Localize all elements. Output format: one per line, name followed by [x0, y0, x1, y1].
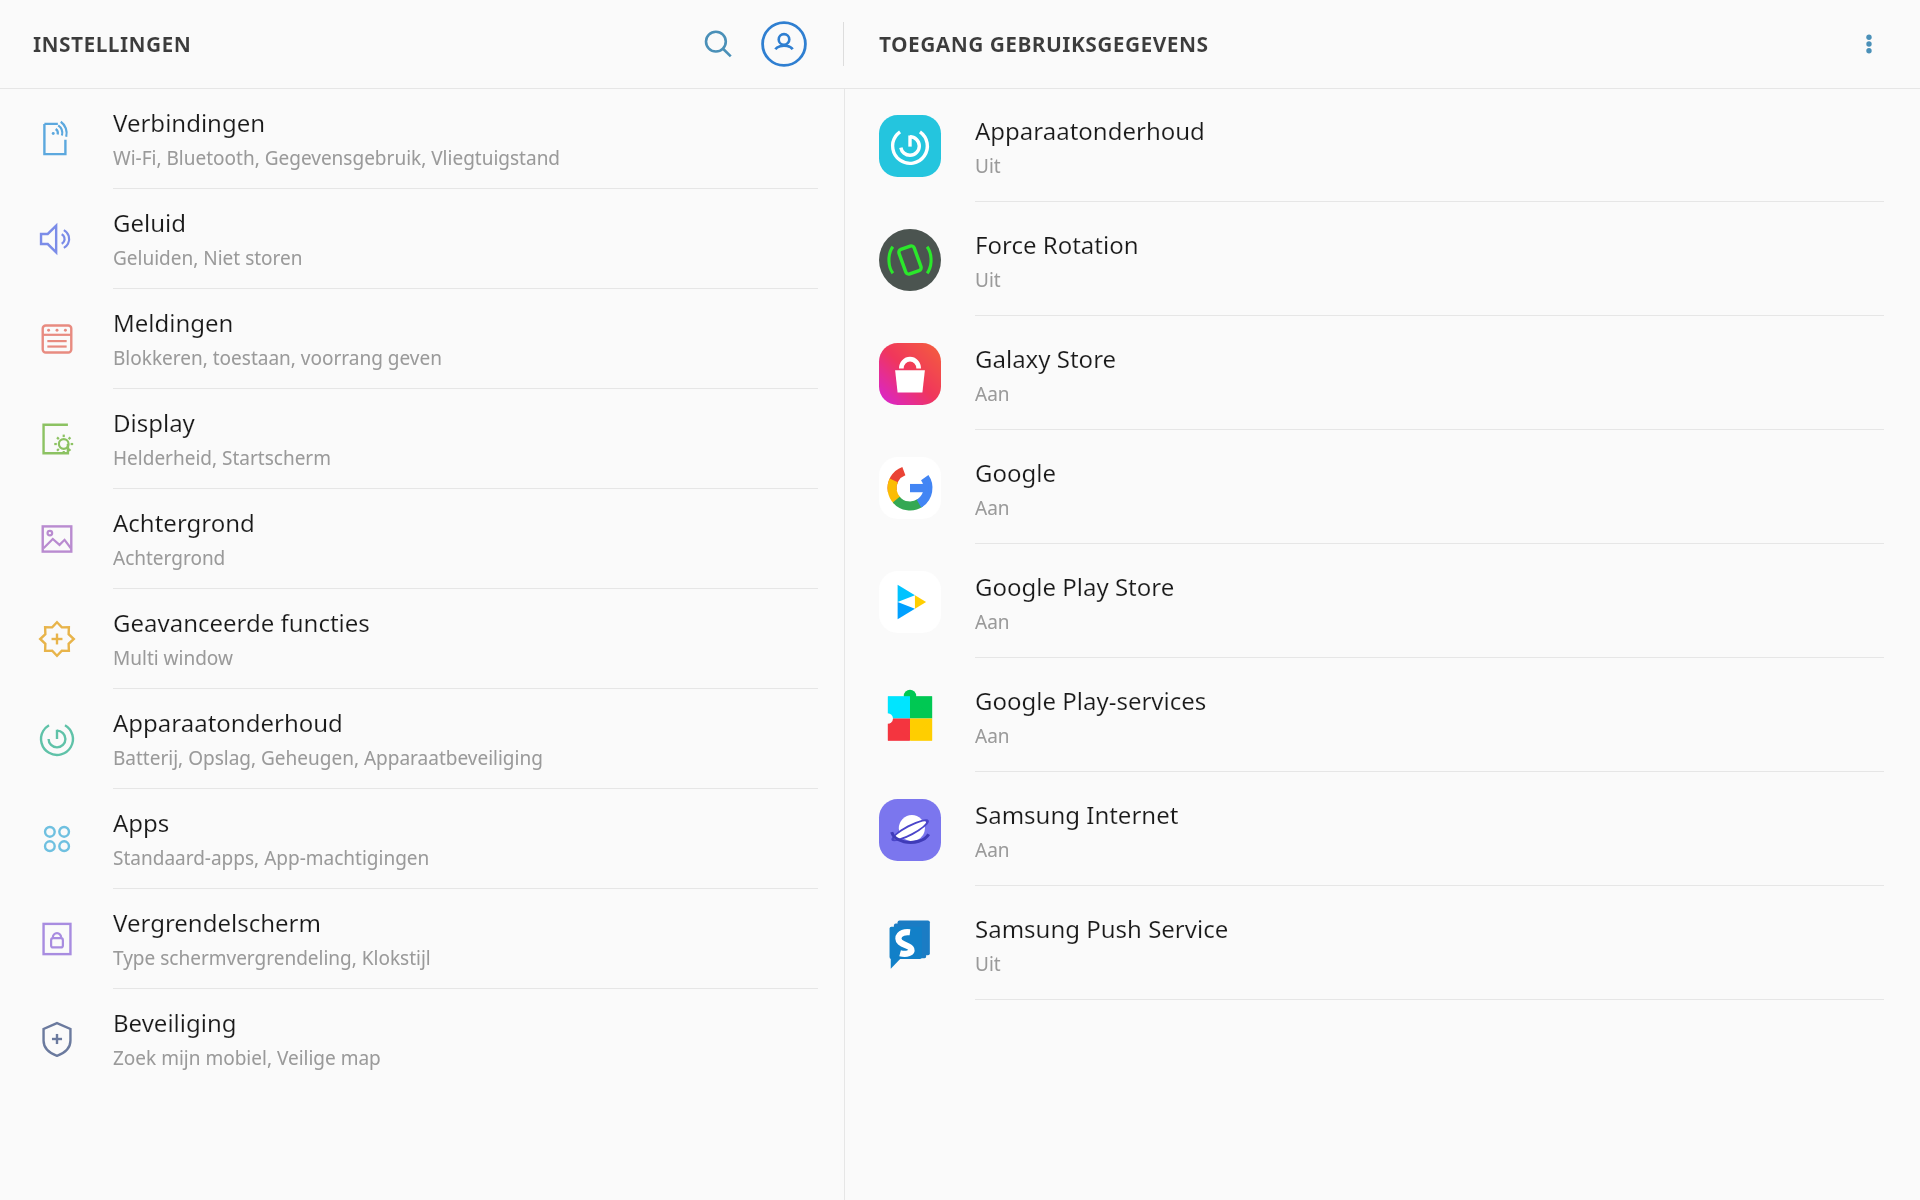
staticText: Zoek mijn mobiel, Veilige map	[113, 1045, 381, 1071]
button[interactable]: Apps	[0, 789, 844, 888]
button[interactable]: Meer opties	[1843, 18, 1895, 70]
button[interactable]: Geavanceerde functies	[0, 589, 844, 688]
staticText: Display	[113, 406, 195, 439]
staticText: Type schermvergrendeling, Klokstijl	[113, 945, 431, 971]
staticText: Galaxy Store	[975, 342, 1117, 375]
staticText: Batterij, Opslag, Geheugen, Apparaatbeve…	[113, 745, 543, 771]
staticText: Wi-Fi, Bluetooth, Gegevensgebruik, Vlieg…	[113, 145, 561, 171]
staticText: Google	[975, 456, 1056, 489]
button[interactable]: Display	[0, 389, 844, 488]
staticText: Geluiden, Niet storen	[113, 245, 303, 271]
staticText: Aan	[975, 723, 1010, 749]
staticText: Beveiliging	[113, 1006, 237, 1039]
staticText: INSTELLINGEN	[33, 30, 192, 59]
staticText: Force Rotation	[975, 228, 1139, 261]
button[interactable]: Force Rotation	[845, 203, 1920, 317]
staticText: Aan	[975, 381, 1010, 407]
staticText: Multi window	[113, 645, 233, 671]
staticText: Achtergrond	[113, 545, 226, 571]
staticText: Aan	[975, 495, 1010, 521]
button[interactable]: Google Play-services	[845, 659, 1920, 773]
staticText: Apparaatonderhoud	[975, 114, 1205, 147]
button[interactable]: Vergrendelscherm	[0, 889, 844, 988]
staticText: Aan	[975, 837, 1010, 863]
button[interactable]: Apparaatonderhoud	[0, 689, 844, 788]
button[interactable]: Achtergrond	[0, 489, 844, 588]
staticText: Blokkeren, toestaan, voorrang geven	[113, 345, 442, 371]
staticText: Meldingen	[113, 306, 234, 339]
staticText: Uit	[975, 153, 1001, 179]
staticText: Google Play-services	[975, 684, 1207, 717]
staticText: Achtergrond	[113, 506, 255, 539]
staticText: Samsung Internet	[975, 798, 1179, 831]
button[interactable]: Apparaatonderhoud	[845, 89, 1920, 203]
button[interactable]: Samsung Push Service	[845, 887, 1920, 1001]
staticText: Uit	[975, 951, 1001, 977]
staticText: Verbindingen	[113, 106, 266, 139]
button[interactable]: Geluid	[0, 189, 844, 288]
button[interactable]: Zoeken	[690, 16, 746, 72]
staticText: Google Play Store	[975, 570, 1175, 603]
staticText: Helderheid, Startscherm	[113, 445, 331, 471]
staticText: Uit	[975, 267, 1001, 293]
button[interactable]: Galaxy Store	[845, 317, 1920, 431]
button[interactable]: Google Play Store	[845, 545, 1920, 659]
button[interactable]: Google	[845, 431, 1920, 545]
button[interactable]: Samsung Internet	[845, 773, 1920, 887]
staticText: Standaard-apps, App-machtigingen	[113, 845, 430, 871]
staticText: Vergrendelscherm	[113, 906, 321, 939]
staticText: Apparaatonderhoud	[113, 706, 343, 739]
staticText: Apps	[113, 806, 170, 839]
staticText: TOEGANG GEBRUIKSGEGEVENS	[879, 30, 1209, 59]
staticText: Samsung Push Service	[975, 912, 1229, 945]
button[interactable]: Verbindingen	[0, 89, 844, 188]
staticText: Geavanceerde functies	[113, 606, 370, 639]
button[interactable]: Meldingen	[0, 289, 844, 388]
button[interactable]: Beveiliging	[0, 989, 844, 1088]
staticText: Aan	[975, 609, 1010, 635]
staticText: Geluid	[113, 206, 186, 239]
button[interactable]: Account	[756, 16, 812, 72]
